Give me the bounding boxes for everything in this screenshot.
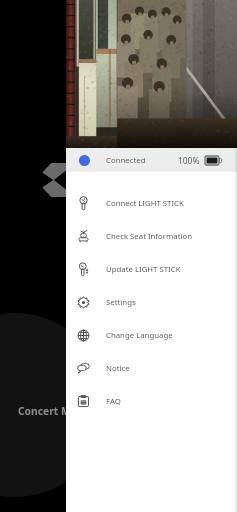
button[interactable]: FAQ: [66, 385, 237, 418]
staticText: Update LIGHT STICK: [106, 264, 181, 275]
staticText: Settings: [106, 297, 136, 308]
staticText: Change Language: [106, 330, 173, 341]
button[interactable]: Connect LIGHT STICK: [66, 187, 237, 220]
button[interactable]: Connected: [66, 148, 237, 172]
button[interactable]: Settings: [66, 286, 237, 319]
button[interactable]: Notice: [66, 352, 237, 385]
button[interactable]: Check Seat Information: [66, 220, 237, 253]
staticText: Connect LIGHT STICK: [106, 198, 184, 209]
staticText: Check Seat Information: [106, 231, 193, 242]
staticText: Connected: [106, 155, 146, 166]
button[interactable]: Update LIGHT STICK: [66, 253, 237, 286]
staticText: Notice: [106, 363, 130, 374]
staticText: FAQ: [106, 396, 121, 407]
staticText: 100%: [178, 155, 200, 166]
staticText: Concert Mode: [18, 404, 90, 418]
button[interactable]: Change Language: [66, 319, 237, 352]
